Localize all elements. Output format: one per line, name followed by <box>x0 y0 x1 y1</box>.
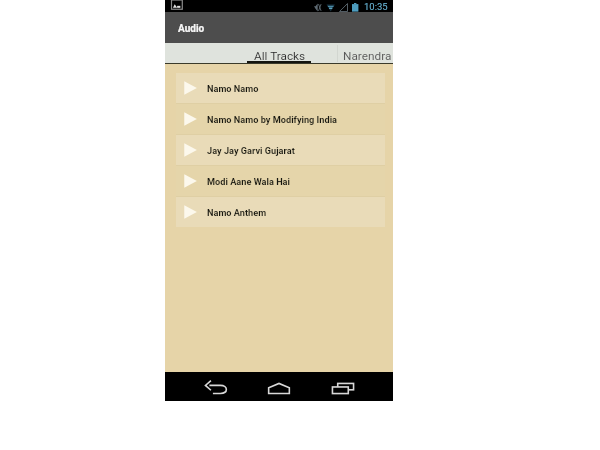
button[interactable]: Modi Aane Wala Hai <box>176 166 385 196</box>
button[interactable]: All Tracks <box>240 43 320 64</box>
button[interactable]: Recent apps <box>318 372 368 401</box>
staticText: Namo Anthem <box>207 207 267 218</box>
button[interactable]: Namo Namo by Modifying India <box>176 104 385 134</box>
button[interactable]: Namo Anthem <box>176 197 385 227</box>
button[interactable]: Back <box>191 372 241 401</box>
button[interactable]: Jay Jay Garvi Gujarat <box>176 135 385 165</box>
staticText: Namo Namo by Modifying India <box>207 114 337 125</box>
staticText: Namo Namo <box>207 83 259 94</box>
button[interactable]: Home <box>254 372 304 401</box>
staticText: Modi Aane Wala Hai <box>207 176 290 187</box>
button[interactable]: Namo Namo <box>176 73 385 103</box>
staticText: Jay Jay Garvi Gujarat <box>207 145 295 156</box>
staticText: Narendra Modi <box>343 49 395 63</box>
staticText: Audio <box>178 23 205 35</box>
button[interactable]: Narendra Modi <box>341 43 393 64</box>
staticText: 10:35 <box>364 1 388 12</box>
staticText: All Tracks <box>254 49 306 63</box>
